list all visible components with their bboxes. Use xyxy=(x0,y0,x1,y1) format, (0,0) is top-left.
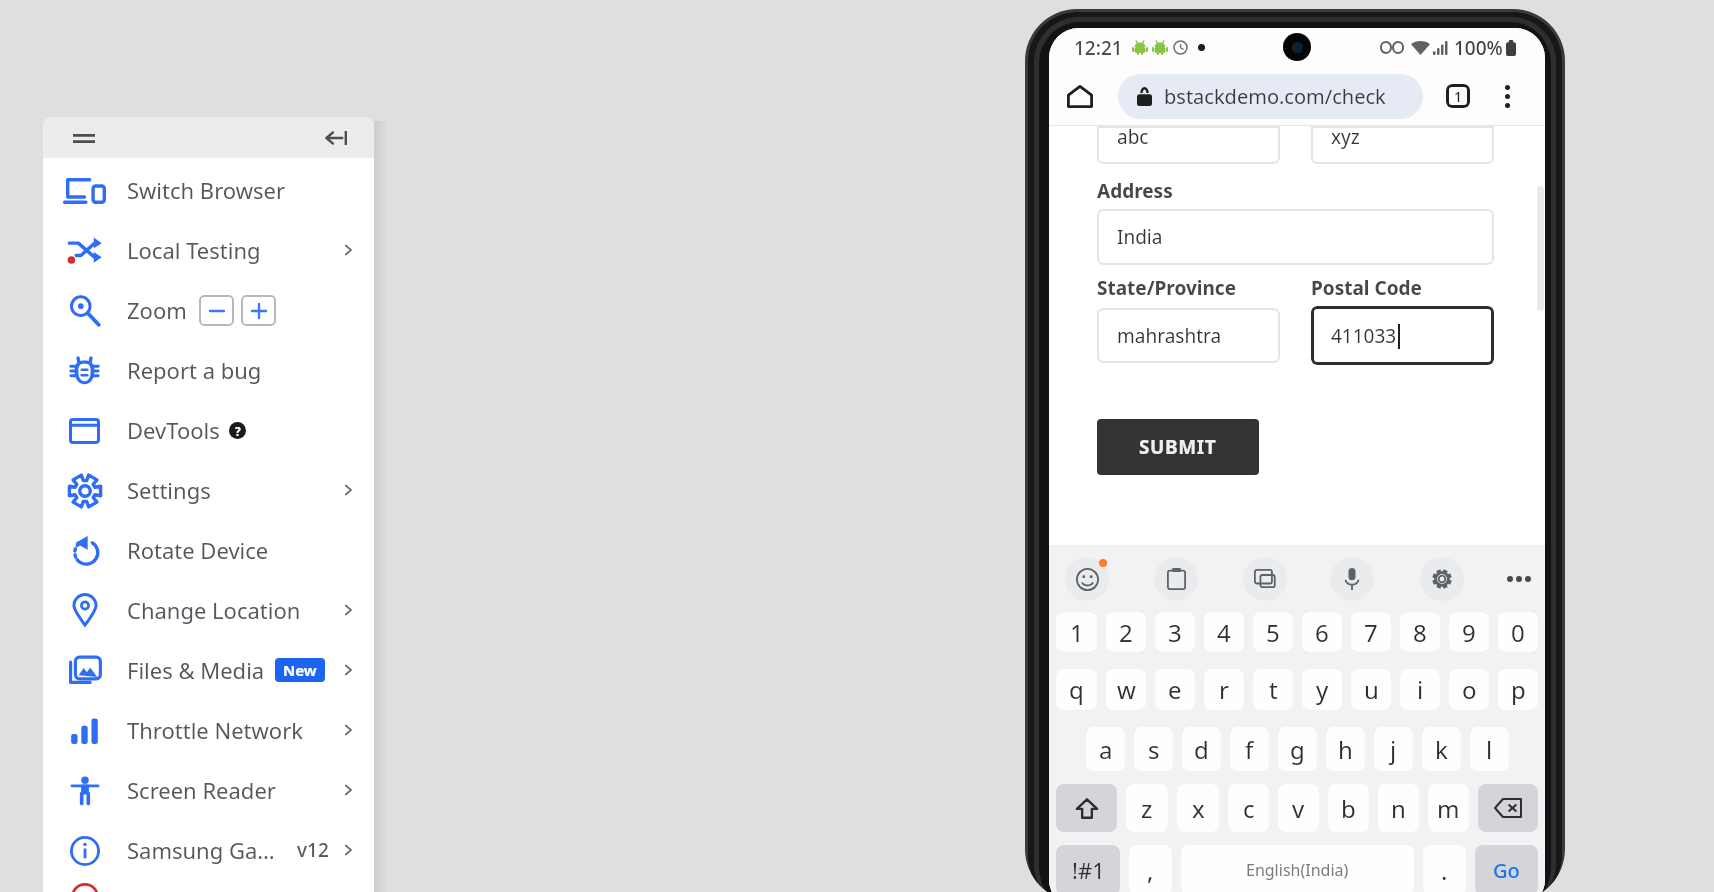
button[interactable]: r xyxy=(1204,669,1244,710)
button[interactable]: b xyxy=(1328,784,1369,832)
button[interactable]: 5 xyxy=(1253,612,1293,652)
button[interactable]: mahrashtra xyxy=(1097,308,1280,363)
button[interactable]: 4 xyxy=(1204,612,1244,652)
button[interactable]: DevTools xyxy=(43,400,374,460)
button[interactable]: Zoom xyxy=(43,280,374,340)
button[interactable]: e xyxy=(1155,669,1195,710)
button[interactable]: x xyxy=(1177,784,1219,832)
button[interactable]: Emoji xyxy=(1065,557,1109,601)
button[interactable]: Voice input xyxy=(1330,557,1374,601)
button[interactable]: Zoom out xyxy=(199,295,234,326)
button[interactable]: More keyboard options xyxy=(1498,558,1540,600)
button[interactable]: s xyxy=(1134,727,1173,771)
button[interactable]: Switch Browser xyxy=(43,160,374,220)
button[interactable]: i xyxy=(1400,669,1440,710)
staticText: y xyxy=(1316,673,1329,706)
button[interactable]: Zoom in xyxy=(241,295,276,326)
button[interactable]: m xyxy=(1428,784,1469,832)
button[interactable]: , xyxy=(1129,845,1172,892)
button[interactable]: 0 xyxy=(1498,612,1538,652)
button[interactable]: 3 xyxy=(1155,612,1195,652)
staticText: State/Province xyxy=(1097,275,1237,301)
staticText: 2 xyxy=(1119,616,1133,649)
staticText: m xyxy=(1437,792,1460,825)
staticText: bstackdemo.com/check xyxy=(1164,83,1386,110)
button[interactable]: Shift xyxy=(1056,784,1117,832)
button[interactable]: h xyxy=(1326,727,1365,771)
button[interactable]: 1 xyxy=(1056,612,1097,652)
button[interactable]: a xyxy=(1086,727,1125,771)
button[interactable]: t xyxy=(1253,669,1293,710)
button[interactable]: z xyxy=(1126,784,1168,832)
button[interactable]: Rotate Device xyxy=(43,520,374,580)
button[interactable]: 9 xyxy=(1449,612,1489,652)
button[interactable]: Change Location xyxy=(43,580,374,640)
staticText: 8 xyxy=(1413,616,1427,649)
button[interactable]: Go xyxy=(1475,845,1538,892)
staticText: v12 xyxy=(297,837,329,863)
button[interactable]: Backspace xyxy=(1478,784,1538,832)
button[interactable]: Local Testing xyxy=(43,220,374,280)
button[interactable]: India xyxy=(1097,209,1494,265)
button[interactable]: xyz xyxy=(1311,126,1494,164)
button[interactable]: Settings xyxy=(43,460,374,520)
staticText: x xyxy=(1192,792,1205,825)
button[interactable]: v xyxy=(1278,784,1319,832)
button[interactable]: u xyxy=(1351,669,1391,710)
button[interactable]: !#1 xyxy=(1056,845,1120,892)
button[interactable]: f xyxy=(1230,727,1269,771)
button[interactable]: o xyxy=(1449,669,1489,710)
button[interactable]: SUBMIT xyxy=(1097,419,1259,475)
staticText: Samsung Ga… xyxy=(127,835,275,865)
staticText: Screen Reader xyxy=(127,775,276,805)
staticText: k xyxy=(1435,733,1448,766)
button[interactable]: abc xyxy=(1097,126,1280,164)
button[interactable]: q xyxy=(1056,669,1097,710)
button[interactable]: p xyxy=(1498,669,1538,710)
button[interactable]: k xyxy=(1422,727,1461,771)
staticText: abc xyxy=(1117,126,1149,150)
button[interactable]: 2 xyxy=(1106,612,1146,652)
button[interactable]: Clipboard xyxy=(1154,557,1198,601)
button[interactable]: g xyxy=(1278,727,1317,771)
button[interactable]: d xyxy=(1182,727,1221,771)
button[interactable]: l xyxy=(1470,727,1509,771)
button[interactable]: w xyxy=(1106,669,1146,710)
button[interactable]: Samsung Ga… xyxy=(43,820,374,880)
button[interactable]: Translate xyxy=(1243,557,1287,601)
button[interactable]: 7 xyxy=(1351,612,1391,652)
staticText: xyz xyxy=(1331,126,1360,150)
staticText: Change Location xyxy=(127,595,301,625)
staticText: d xyxy=(1194,733,1209,766)
button[interactable]: Screen Reader xyxy=(43,760,374,820)
button[interactable]: bstackdemo.com/check xyxy=(1118,74,1423,119)
staticText: Local Testing xyxy=(127,235,261,265)
button[interactable]: Collapse panel xyxy=(323,125,349,151)
button[interactable] xyxy=(43,880,374,892)
button[interactable]: More options xyxy=(1500,82,1514,110)
button[interactable]: Keyboard settings xyxy=(1420,557,1464,601)
staticText: 4 xyxy=(1217,616,1231,649)
staticText: z xyxy=(1141,792,1153,825)
staticText: 0 xyxy=(1511,616,1525,649)
staticText: j xyxy=(1390,733,1397,766)
button[interactable]: Throttle Network xyxy=(43,700,374,760)
button[interactable]: Report a bug xyxy=(43,340,374,400)
button[interactable]: Files & Media xyxy=(43,640,374,700)
button[interactable]: 411033 xyxy=(1311,306,1494,365)
button[interactable]: y xyxy=(1302,669,1342,710)
button[interactable]: . xyxy=(1423,845,1466,892)
button[interactable]: English(India) xyxy=(1181,845,1414,892)
button[interactable]: c xyxy=(1228,784,1269,832)
button[interactable]: j xyxy=(1374,727,1413,771)
button[interactable]: 8 xyxy=(1400,612,1440,652)
staticText: a xyxy=(1099,733,1113,766)
button[interactable]: Home xyxy=(1066,82,1094,110)
button[interactable]: Tabs xyxy=(1446,84,1470,108)
button[interactable]: Menu xyxy=(71,125,97,151)
staticText: p xyxy=(1511,673,1526,706)
staticText: 12:21 xyxy=(1074,35,1123,61)
button[interactable]: 6 xyxy=(1302,612,1342,652)
button[interactable]: n xyxy=(1378,784,1419,832)
staticText: s xyxy=(1148,733,1160,766)
